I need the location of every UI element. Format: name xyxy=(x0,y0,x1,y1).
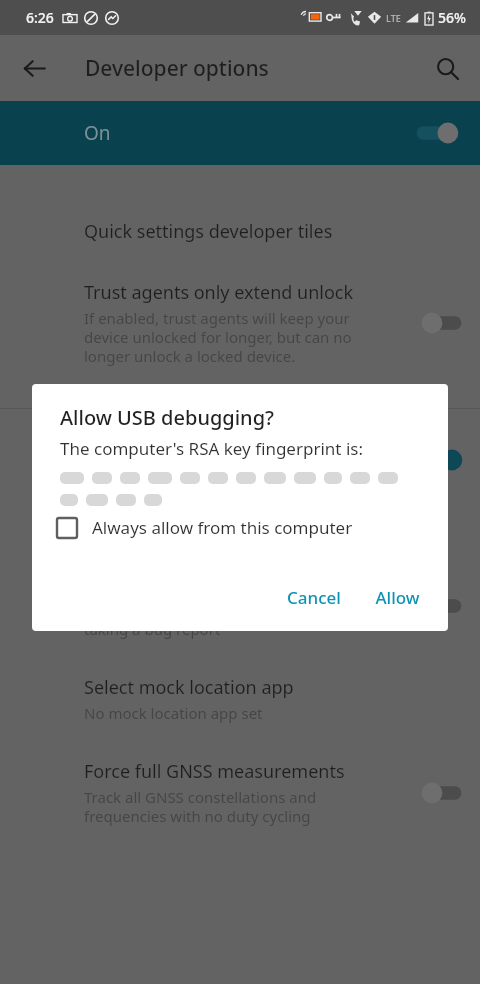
button[interactable]: On xyxy=(0,101,480,165)
staticText: Trust agents only extend unlock xyxy=(84,280,354,305)
button[interactable]: Quick settings developer tiles xyxy=(0,201,480,262)
staticText: 56% xyxy=(438,8,466,27)
staticText: Allow USB debugging? xyxy=(60,404,274,431)
staticText: Track all GNSS constellations and freque… xyxy=(84,787,317,826)
staticText: Select mock location app xyxy=(84,675,294,700)
staticText: Always allow from this computer xyxy=(92,516,353,539)
staticText: Allow xyxy=(375,586,420,609)
button[interactable]: Revoke USB debugging authorisations xyxy=(0,493,480,554)
staticText: The computer's RSA key fingerprint is: xyxy=(60,437,363,460)
button[interactable]: Bug report shortcut xyxy=(0,554,480,657)
staticText: No mock location app set xyxy=(84,703,263,723)
staticText: Cancel xyxy=(287,586,341,609)
staticText: Quick settings developer tiles xyxy=(84,219,333,244)
staticText: Revoke USB debugging authorisations xyxy=(84,511,409,536)
button[interactable]: Search xyxy=(423,44,471,92)
staticText: 6:26 xyxy=(26,8,54,27)
button[interactable]: Back xyxy=(10,44,58,92)
staticText: Developer options xyxy=(85,54,269,83)
button[interactable]: Cancel xyxy=(277,578,351,617)
staticText: LTE xyxy=(386,12,401,24)
button[interactable]: Select mock location app xyxy=(0,657,480,741)
button[interactable]: Trust agents only extend unlock xyxy=(0,262,480,384)
button[interactable] xyxy=(0,431,480,489)
staticText: Force full GNSS measurements xyxy=(84,759,345,784)
button[interactable]: Force full GNSS measurements xyxy=(0,741,480,844)
staticText: If enabled, trust agents will keep your … xyxy=(84,308,352,366)
button[interactable]: Allow xyxy=(365,578,430,617)
staticText: Show a button in the power menu for taki… xyxy=(84,600,348,639)
button[interactable]: Always allow from this computer xyxy=(56,512,353,543)
staticText: On xyxy=(84,120,111,146)
